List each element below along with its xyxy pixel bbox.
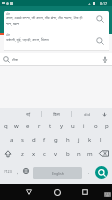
button[interactable] <box>95 166 108 179</box>
staticText: i <box>83 122 85 130</box>
button[interactable]: f <box>39 134 50 145</box>
staticText: + <box>88 1 91 6</box>
staticText: e <box>26 122 30 130</box>
staticText: उगल, उससे बनना, जी उगल, तीड सेना, टीड नस… <box>6 15 83 20</box>
staticText: p <box>105 122 109 130</box>
button[interactable] <box>4 150 12 158</box>
button[interactable]: y <box>56 120 67 131</box>
staticText: w <box>14 122 19 130</box>
staticText: l <box>100 136 102 144</box>
button[interactable]: j <box>73 134 84 145</box>
button[interactable]: e <box>22 120 33 131</box>
button[interactable]: g <box>50 134 61 145</box>
button[interactable] <box>0 53 112 65</box>
staticText: 8:17 <box>100 1 108 6</box>
button[interactable]: . <box>85 165 92 178</box>
staticText: टीक <box>12 57 18 62</box>
button[interactable]: b <box>62 148 73 159</box>
staticText: स्रोत <box>6 12 10 15</box>
button[interactable] <box>4 11 109 51</box>
staticText: f <box>43 136 46 144</box>
staticText: r <box>38 122 41 130</box>
button[interactable]: p <box>101 120 112 131</box>
button[interactable]: s <box>17 134 28 145</box>
staticText: नान, खान <box>6 21 20 26</box>
staticText: n <box>77 150 81 158</box>
button[interactable]: ?123 <box>2 165 14 178</box>
button[interactable]: t <box>45 120 56 131</box>
staticText: , <box>17 169 19 175</box>
staticText: j <box>78 136 80 144</box>
button[interactable]: d <box>28 134 39 145</box>
staticText: k <box>88 136 92 144</box>
button[interactable] <box>54 189 61 196</box>
staticText: u <box>71 122 75 130</box>
staticText: x <box>32 150 36 158</box>
staticText: did <box>84 112 90 117</box>
button[interactable]: w <box>11 120 22 131</box>
button[interactable]: z <box>17 148 28 159</box>
staticText: . <box>88 169 90 175</box>
button[interactable]: m <box>84 148 95 159</box>
staticText: v <box>54 150 58 158</box>
staticText: स्रोत <box>6 33 10 36</box>
staticText: ?123 <box>4 169 12 174</box>
button[interactable] <box>82 189 88 195</box>
button[interactable] <box>26 189 32 195</box>
staticText: a <box>10 136 14 144</box>
button[interactable] <box>104 192 111 197</box>
button[interactable]: k <box>84 134 95 145</box>
button[interactable]: r <box>34 120 45 131</box>
button[interactable] <box>23 168 29 174</box>
staticText: नई <box>26 112 31 117</box>
staticText: g <box>54 136 58 144</box>
button[interactable]: n <box>73 148 84 159</box>
button[interactable]: u <box>67 120 78 131</box>
button[interactable]: l <box>95 134 106 145</box>
button[interactable]: h <box>62 134 73 145</box>
staticText: English <box>52 171 64 176</box>
staticText: y <box>60 122 64 130</box>
button[interactable]: नई <box>18 110 38 119</box>
staticText: o <box>94 122 98 130</box>
staticText: m <box>87 150 93 158</box>
button[interactable]: did <box>76 110 98 119</box>
staticText: h <box>66 136 70 144</box>
button[interactable]: x <box>28 148 39 159</box>
button[interactable]: किस <box>46 110 66 119</box>
staticText: d <box>32 136 36 144</box>
staticText: t <box>49 122 52 130</box>
staticText: किस <box>53 112 60 117</box>
staticText: थकेली, बुंई, पहाड़ी, उगल, विलय <box>6 37 49 42</box>
button[interactable] <box>102 56 108 63</box>
staticText: c <box>43 150 46 158</box>
button[interactable]: q <box>0 120 11 131</box>
button[interactable]: i <box>78 120 89 131</box>
button[interactable]: , <box>14 165 21 178</box>
button[interactable]: v <box>50 148 61 159</box>
staticText: q <box>4 122 8 130</box>
button[interactable]: c <box>39 148 50 159</box>
button[interactable]: o <box>90 120 101 131</box>
button[interactable] <box>99 150 109 157</box>
staticText: z <box>21 150 24 158</box>
staticText: b <box>66 150 70 158</box>
staticText: s <box>21 136 24 144</box>
button[interactable]: English <box>33 167 82 179</box>
button[interactable]: a <box>6 134 17 145</box>
